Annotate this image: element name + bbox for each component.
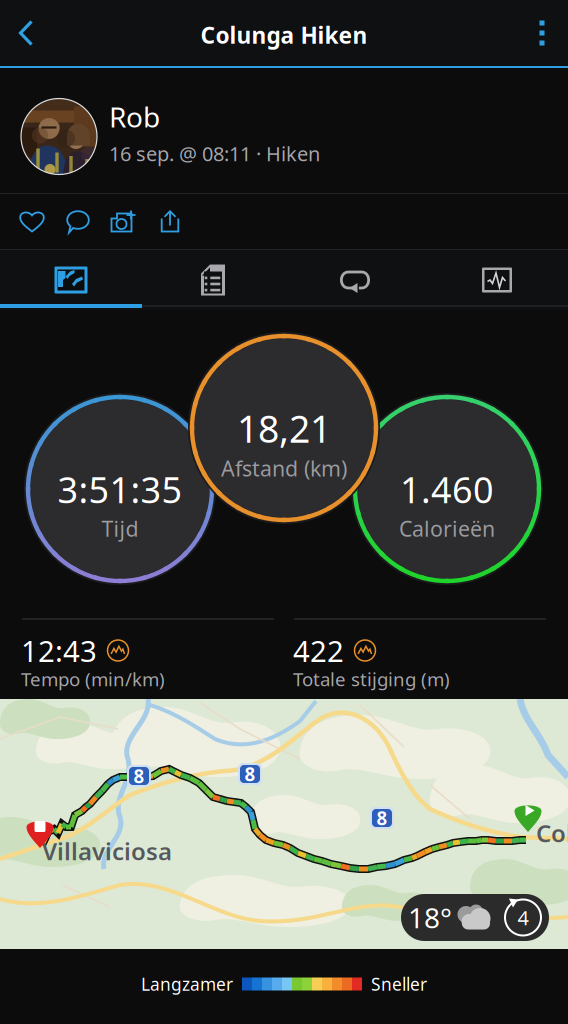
button[interactable]: Share <box>147 196 193 246</box>
staticText: Tijd <box>101 514 138 542</box>
staticText: Colunga Hiken <box>200 20 367 50</box>
staticText: 422 <box>293 631 344 670</box>
staticText: Tempo (min/km) <box>21 666 165 691</box>
button[interactable]: Details <box>142 252 284 308</box>
button[interactable]: Comment <box>55 196 101 246</box>
staticText: 16 sep. @ 08:11 · Hiken <box>109 140 320 167</box>
staticText: Langzamer <box>141 972 233 995</box>
staticText: 18,21 <box>237 403 331 453</box>
staticText: 12:43 <box>21 631 97 670</box>
staticText: Rob <box>109 98 160 135</box>
staticText: Totale stijging (m) <box>293 666 450 691</box>
button[interactable]: Like <box>9 196 55 246</box>
button[interactable]: Back <box>2 6 50 60</box>
staticText: 1.460 <box>400 465 494 513</box>
staticText: Villaviciosa <box>42 835 172 867</box>
staticText: 8 <box>244 762 255 786</box>
staticText: 3:51:35 <box>57 465 182 513</box>
staticText: 8 <box>376 806 387 830</box>
button[interactable]: Add photo <box>101 196 147 246</box>
button[interactable]: Charts <box>426 252 568 308</box>
button[interactable]: Map <box>0 252 142 308</box>
staticText: Afstand (km) <box>221 454 347 482</box>
button[interactable]: More options <box>518 6 566 60</box>
staticText: Sneller <box>371 972 427 995</box>
staticText: 4 <box>517 904 528 931</box>
staticText: Calorieën <box>399 514 495 542</box>
button[interactable]: Laps <box>284 252 426 308</box>
staticText: 18° <box>408 899 452 936</box>
staticText: 8 <box>133 764 144 788</box>
staticText: Colunga <box>536 817 568 849</box>
